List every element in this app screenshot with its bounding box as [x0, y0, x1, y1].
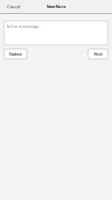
staticText: Options — [9, 51, 22, 56]
button[interactable]: Options — [4, 49, 27, 59]
button[interactable]: Next — [88, 49, 108, 59]
staticText: Cancel — [7, 4, 20, 9]
button[interactable]: Cancel — [0, 0, 24, 13]
staticText: New Note — [46, 4, 65, 9]
staticText: Next — [94, 51, 102, 56]
staticText: Enter a message... — [7, 23, 41, 29]
